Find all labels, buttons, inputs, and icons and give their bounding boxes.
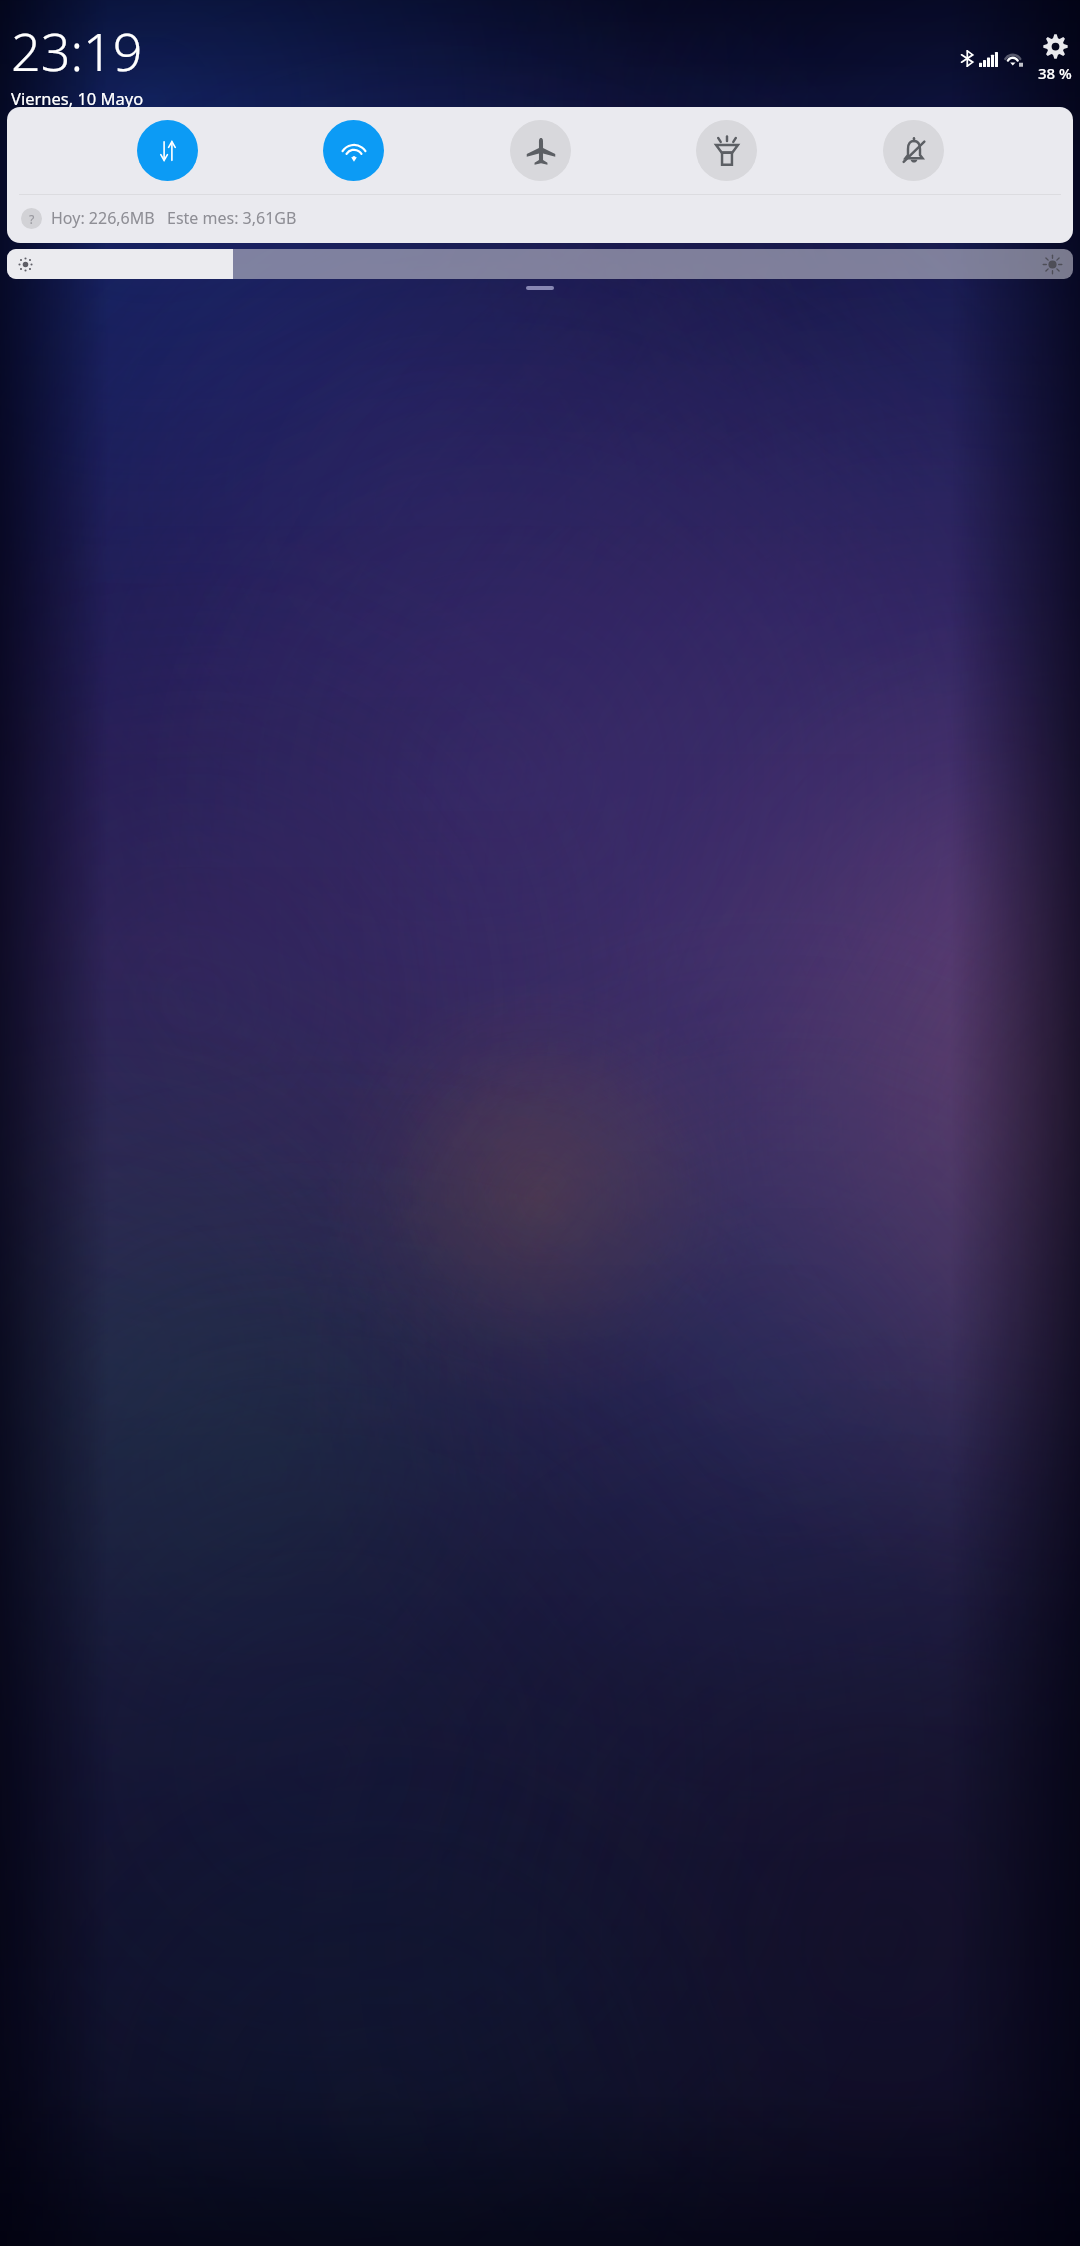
staticText: ? — [29, 211, 35, 227]
button[interactable]: Settings — [1039, 30, 1071, 62]
button[interactable]: Expand panel — [526, 286, 554, 290]
button[interactable]: Wi-Fi — [323, 120, 384, 181]
button[interactable]: Flashlight — [696, 120, 757, 181]
button[interactable]: ? — [7, 195, 1073, 243]
button[interactable]: Mute — [883, 120, 944, 181]
button[interactable]: Airplane mode — [510, 120, 571, 181]
staticText: Viernes, 10 Mayo — [11, 87, 144, 107]
button[interactable]: Brightness — [7, 249, 1073, 279]
staticText: 38 % — [1038, 63, 1072, 83]
button[interactable]: Mobile data — [137, 120, 198, 181]
staticText: 23:19 — [11, 15, 143, 86]
staticText: Hoy: 226,6MB — [51, 207, 155, 229]
staticText: Este mes: 3,61GB — [167, 207, 297, 229]
